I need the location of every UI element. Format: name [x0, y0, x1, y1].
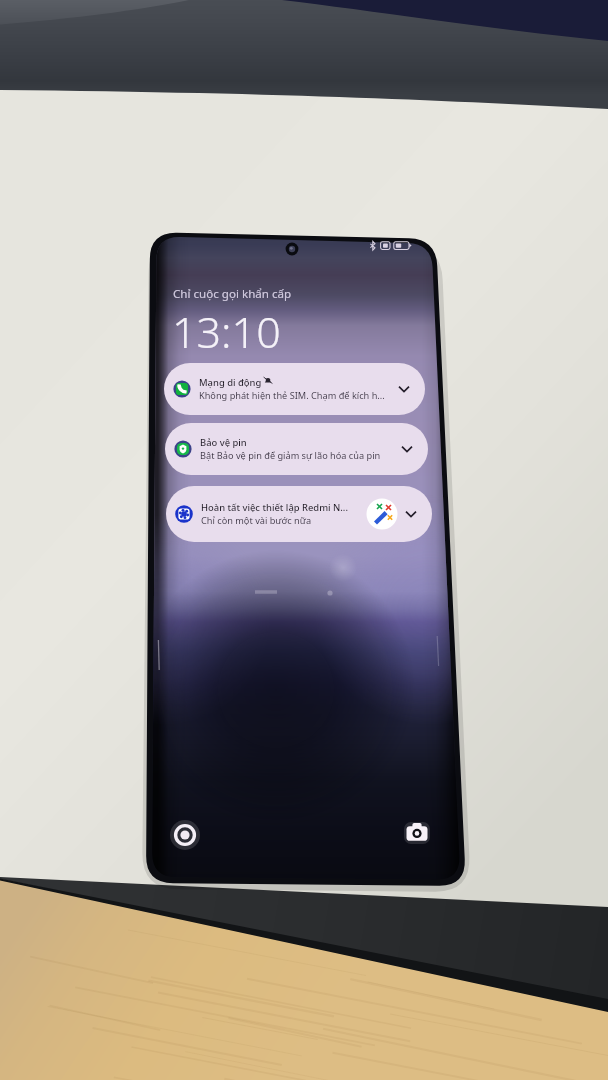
button[interactable] [0, 0, 608, 1080]
